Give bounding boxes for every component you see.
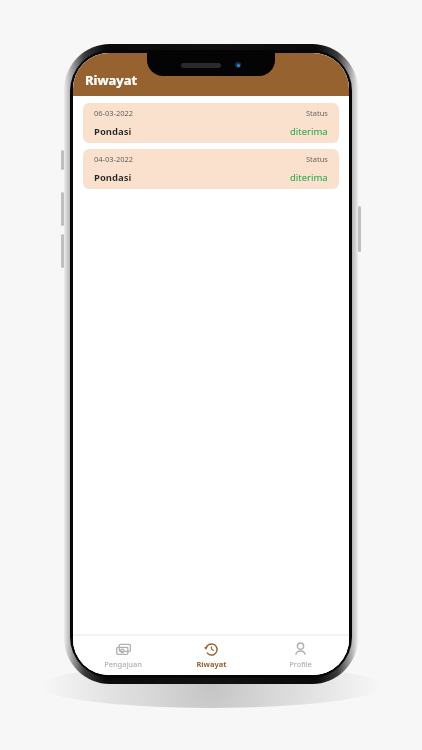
staticText: diterima: [290, 171, 328, 184]
other: Pengajuan: [116, 642, 131, 657]
staticText: Profile: [289, 659, 312, 669]
button[interactable]: Pengajuan: [84, 635, 162, 675]
button[interactable]: Profile: [261, 635, 339, 675]
staticText: Pondasi: [94, 125, 132, 138]
button[interactable]: Riwayat: [172, 635, 250, 675]
staticText: Pondasi: [94, 171, 132, 184]
button[interactable]: 06-03-2022: [83, 103, 339, 143]
staticText: Riwayat: [196, 659, 227, 669]
button[interactable]: 04-03-2022: [83, 149, 339, 189]
other: Riwayat: [204, 642, 219, 657]
staticText: Pengajuan: [104, 659, 142, 669]
staticText: Riwayat: [85, 71, 138, 89]
staticText: diterima: [290, 125, 328, 138]
staticText: Status: [306, 108, 328, 118]
staticText: 04-03-2022: [94, 154, 134, 164]
other: Profile: [293, 642, 308, 657]
staticText: 06-03-2022: [94, 108, 134, 118]
staticText: Status: [306, 154, 328, 164]
